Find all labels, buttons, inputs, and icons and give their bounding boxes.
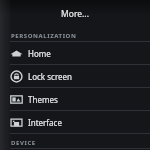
button[interactable]: Home: [0, 42, 150, 64]
button[interactable]: Themes: [0, 88, 150, 110]
staticText: Home: [28, 48, 51, 59]
button[interactable]: More...: [0, 2, 150, 26]
button[interactable]: Interface: [0, 111, 150, 133]
staticText: Themes: [28, 94, 58, 105]
staticText: DEVICE: [11, 139, 36, 147]
staticText: Interface: [28, 117, 62, 128]
staticText: Lock screen: [28, 71, 73, 82]
staticText: PERSONALIZATION: [11, 32, 77, 40]
button[interactable]: Lock screen: [0, 65, 150, 87]
staticText: More...: [61, 8, 89, 20]
